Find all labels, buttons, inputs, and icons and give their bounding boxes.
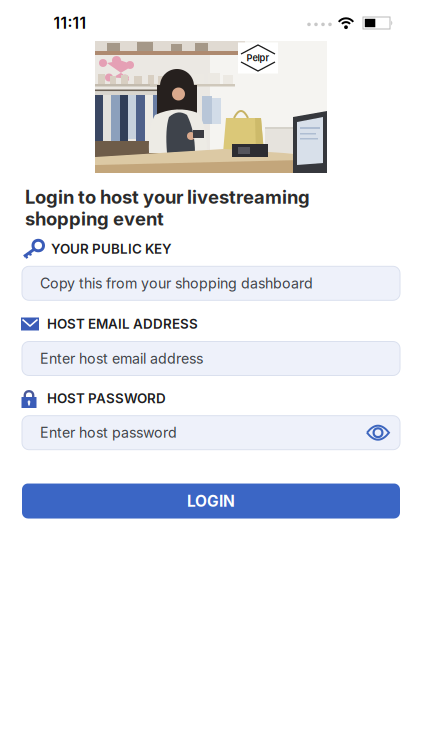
staticText: HOST PASSWORD xyxy=(47,391,166,406)
button[interactable]: Copy this from your shopping dashboard xyxy=(22,266,400,300)
staticText: YOUR PUBLIC KEY xyxy=(51,241,172,257)
button[interactable]: Enter host email address xyxy=(22,341,400,375)
button[interactable]: Show password xyxy=(366,425,390,441)
staticText: Enter host email address xyxy=(40,350,203,367)
staticText: 11:11 xyxy=(53,14,86,32)
staticText: Enter host password xyxy=(40,424,177,441)
staticText: shopping event xyxy=(25,208,164,230)
button[interactable]: LOGIN xyxy=(22,483,400,518)
staticText: HOST EMAIL ADDRESS xyxy=(47,316,198,332)
staticText: LOGIN xyxy=(187,492,235,510)
staticText: Copy this from your shopping dashboard xyxy=(40,275,313,292)
button[interactable]: Enter host password xyxy=(22,416,400,450)
staticText: Login to host your livestreaming xyxy=(25,186,310,208)
staticText: Pelpr xyxy=(246,53,269,63)
